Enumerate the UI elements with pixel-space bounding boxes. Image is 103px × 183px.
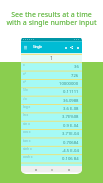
staticText: log x	[23, 105, 31, 109]
staticText: 1/x	[23, 88, 28, 92]
staticText: sin x	[23, 122, 30, 126]
button[interactable]: x²	[21, 71, 82, 79]
staticText: sinh x	[23, 147, 32, 151]
button[interactable]: x³	[21, 79, 82, 87]
staticText: 36.0988	[63, 98, 79, 104]
staticText: See the results at a time	[11, 10, 92, 20]
staticText: 1	[50, 55, 53, 62]
button[interactable]: tan x	[21, 138, 82, 146]
button[interactable]: 1/x	[21, 87, 82, 95]
button[interactable]: Navigate up	[23, 45, 28, 50]
staticText: Single	[33, 45, 43, 49]
button[interactable]: √x	[21, 96, 82, 104]
button[interactable]: 1	[21, 55, 82, 62]
staticText: x²	[23, 72, 26, 76]
button[interactable]: Share	[69, 45, 74, 50]
staticText: cosh x	[23, 155, 33, 159]
staticText: cos x	[23, 130, 31, 134]
button[interactable]: More options	[75, 45, 80, 50]
button[interactable]: cosh x	[21, 154, 82, 162]
button[interactable]: sin x	[21, 121, 82, 129]
button[interactable]: Recent apps	[66, 167, 71, 172]
staticText: 0.11111	[63, 89, 79, 95]
staticText: ln x	[23, 113, 29, 117]
staticText: x	[23, 63, 25, 67]
staticText: 0.106 84	[62, 156, 79, 162]
staticText: x³	[23, 80, 26, 84]
button[interactable]: cos x	[21, 129, 82, 137]
staticText: 3.6 E-08	[63, 106, 79, 112]
button[interactable]: Home	[49, 167, 54, 172]
staticText: -4.5 E-04	[62, 148, 79, 154]
staticText: 10000000	[59, 81, 79, 87]
staticText: 3.71E-04	[62, 131, 79, 137]
button[interactable]: sinh x	[21, 146, 82, 154]
staticText: √x	[23, 97, 27, 101]
staticText: 726	[71, 73, 79, 79]
staticText: 0.70684	[63, 140, 79, 146]
button[interactable]: Favourite	[63, 45, 68, 50]
staticText: 3.7E%08	[62, 114, 79, 120]
button[interactable]: ln x	[21, 112, 82, 120]
staticText: with a single number input	[6, 18, 97, 28]
button[interactable]: x	[21, 62, 82, 70]
button[interactable]: log x	[21, 104, 82, 112]
button[interactable]: Back	[33, 167, 38, 172]
staticText: tan x	[23, 139, 31, 143]
staticText: 0.9 E-04	[63, 123, 79, 129]
staticText: 36	[74, 64, 79, 70]
